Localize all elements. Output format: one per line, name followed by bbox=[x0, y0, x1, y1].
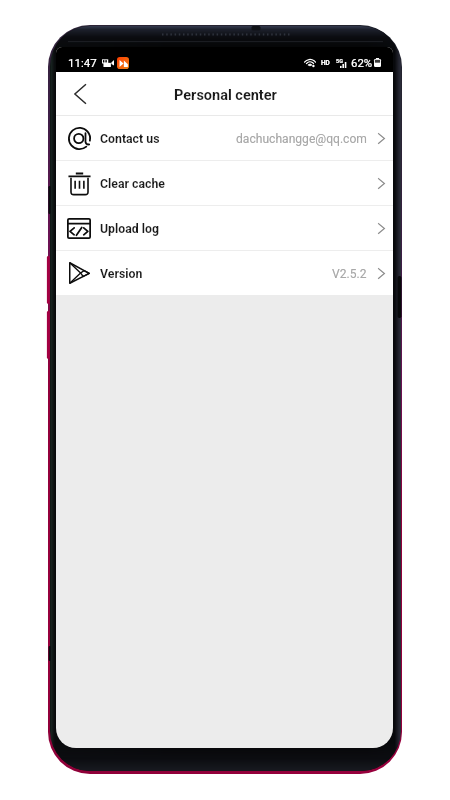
staticText: 62% bbox=[351, 56, 373, 69]
staticText: 5G bbox=[336, 58, 343, 64]
staticText: Personal center bbox=[174, 87, 277, 104]
staticText: HD bbox=[321, 59, 330, 67]
button[interactable]: Contact us bbox=[56, 116, 393, 160]
staticText: V2.5.2 bbox=[332, 267, 367, 281]
staticText: Upload log bbox=[100, 222, 159, 236]
staticText: Version bbox=[100, 267, 143, 281]
staticText: Contact us bbox=[100, 132, 160, 146]
button[interactable]: Upload log bbox=[56, 206, 393, 250]
button[interactable]: Version bbox=[56, 251, 393, 295]
button[interactable]: Clear cache bbox=[56, 161, 393, 205]
button[interactable]: Back bbox=[60, 74, 100, 114]
staticText: dachuchangge@qq.com bbox=[236, 132, 367, 146]
staticText: 11:47 bbox=[68, 56, 97, 69]
staticText: Clear cache bbox=[100, 177, 166, 191]
